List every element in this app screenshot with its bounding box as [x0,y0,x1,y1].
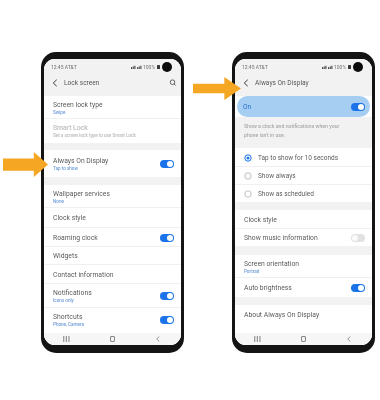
staticText: Set a screen lock type to use Smart Lock [53,133,136,138]
staticText: On [243,103,351,111]
button[interactable]: Shortcuts [44,308,181,332]
staticText: Tap to show [53,166,78,171]
button[interactable]: Wallpaper services [44,185,181,208]
button[interactable]: Back [49,77,60,88]
staticText: Notifications [53,289,92,297]
button[interactable]: Show as scheduled [235,185,372,202]
staticText: Phone, Camera [53,322,84,327]
staticText: Show music information [244,234,318,242]
staticText: Widgets [53,252,78,260]
staticText: None [53,199,64,204]
staticText: Icons only [53,298,74,303]
button[interactable]: Clock style [44,208,181,228]
button[interactable]: Widgets [44,247,181,265]
staticText: Tap to show for 10 seconds [258,154,339,162]
button[interactable]: Smart Lock [44,119,181,143]
button[interactable]: About Always On Display [235,305,372,324]
staticText: Contact information [53,271,114,279]
staticText: Screen lock type [53,101,103,109]
staticText: Show a clock and notifications when your… [244,123,340,138]
staticText: Lock screen [64,79,100,87]
button[interactable]: On [237,96,370,117]
staticText: 100% [143,64,156,70]
staticText: 100% [334,64,347,70]
button[interactable]: Always On Display [44,150,181,177]
button[interactable]: Home [89,333,135,345]
staticText: Screen orientation [244,260,300,268]
button[interactable]: Back [135,333,181,345]
button[interactable]: Show always [235,167,372,185]
staticText: Roaming clock [53,234,98,242]
button[interactable]: Notifications [44,284,181,308]
button[interactable]: Roaming clock [44,228,181,247]
staticText: Portrait [244,269,260,274]
button[interactable]: Recent apps [44,333,89,345]
staticText: 12:45 AT&T [51,64,77,70]
button[interactable]: Clock style [235,210,372,229]
button[interactable]: Screen lock type [44,96,181,119]
staticText: Always On Display [255,79,309,87]
staticText: Always On Display [53,157,109,165]
staticText: 12:45 AT&T [242,64,268,70]
button[interactable]: Screen orientation [235,255,372,278]
button[interactable]: Tap to show for 10 seconds [235,148,372,167]
button[interactable]: Search [167,77,178,88]
staticText: Show as scheduled [258,190,314,198]
staticText: Shortcuts [53,313,83,321]
staticText: Swipe [53,110,66,115]
staticText: Auto brightness [244,284,292,292]
button[interactable]: Back [326,333,372,345]
button[interactable]: Home [280,333,326,345]
staticText: Wallpaper services [53,190,110,198]
button[interactable]: Auto brightness [235,278,372,297]
button[interactable]: Recent apps [235,333,280,345]
staticText: Clock style [53,214,86,222]
button[interactable]: Show music information [235,229,372,246]
button[interactable]: Contact information [44,265,181,284]
staticText: About Always On Display [244,311,320,319]
staticText: Clock style [244,216,277,224]
staticText: Show always [258,172,296,180]
button[interactable]: Back [240,77,251,88]
staticText: Smart Lock [53,124,88,132]
